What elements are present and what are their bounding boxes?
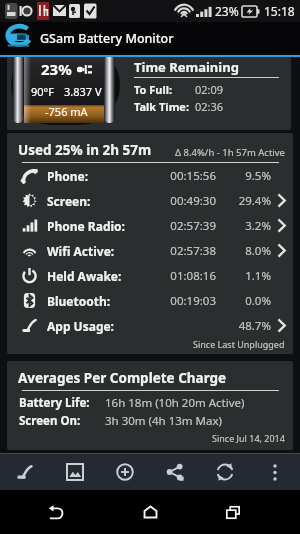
- staticText: Bluetooth:: [47, 293, 111, 309]
- staticText: Phone:: [47, 168, 89, 184]
- staticText: Talk Time:: [134, 99, 195, 114]
- staticText: -756 mA: [45, 104, 88, 119]
- staticText: 16h 18m (10h 20m Active): [105, 395, 245, 411]
- staticText: 00:49:30: [164, 193, 216, 209]
- staticText: Held Awake:: [47, 268, 122, 284]
- staticText: Wifi Active:: [47, 243, 115, 259]
- button[interactable]: Home: [120, 490, 180, 534]
- staticText: 3.2%: [232, 218, 271, 234]
- staticText: Since Last Unplugged: [193, 338, 285, 350]
- staticText: 3h 30m (4h 13m Max): [105, 413, 223, 429]
- staticText: 01:08:16: [164, 268, 216, 284]
- staticText: 02:57:39: [164, 218, 216, 234]
- button[interactable]: Screen:: [7, 188, 293, 213]
- button[interactable]: Share: [150, 454, 200, 490]
- button[interactable]: Phone:: [7, 163, 293, 188]
- staticText: 8.0%: [232, 243, 271, 259]
- button[interactable]: Screenshot: [50, 454, 100, 490]
- staticText: Time Remaining: [134, 58, 239, 76]
- button[interactable]: Battery history chart: [0, 454, 50, 490]
- staticText: 00:19:03: [164, 293, 216, 309]
- staticText: 29.4%: [232, 193, 271, 209]
- staticText: Averages Per Complete Charge: [18, 369, 227, 387]
- staticText: Screen:: [47, 193, 91, 209]
- button[interactable]: Held Awake:: [7, 263, 293, 288]
- staticText: Since Jul 14, 2014: [212, 432, 285, 444]
- button[interactable]: More options: [250, 454, 300, 490]
- staticText: Δ 8.4%/h - 1h 57m Active: [175, 146, 285, 159]
- staticText: 02:57:38: [164, 243, 216, 259]
- staticText: 0.0%: [232, 293, 271, 309]
- button[interactable]: App Usage:: [7, 313, 293, 338]
- button[interactable]: Bluetooth:: [7, 288, 293, 313]
- staticText: 3.837 V: [64, 84, 102, 99]
- staticText: GSam Battery Monitor: [40, 30, 174, 47]
- staticText: Phone Radio:: [47, 218, 125, 234]
- staticText: 23%: [215, 3, 239, 19]
- button[interactable]: Phone Radio:: [7, 213, 293, 238]
- button[interactable]: Refresh: [200, 454, 250, 490]
- staticText: Used 25% in 2h 57m: [18, 141, 152, 159]
- staticText: 02:36: [195, 99, 224, 114]
- staticText: 1.1%: [232, 268, 271, 284]
- staticText: 02:09: [195, 82, 224, 97]
- button[interactable]: Back: [0, 490, 112, 534]
- staticText: 23%: [41, 59, 72, 79]
- staticText: 48.7%: [232, 318, 271, 334]
- staticText: 00:15:56: [164, 168, 216, 184]
- staticText: Battery Life:: [19, 395, 105, 411]
- button[interactable]: Wifi Active:: [7, 238, 293, 263]
- staticText: 9.5%: [232, 168, 271, 184]
- staticText: 15:18: [264, 3, 295, 19]
- staticText: To Full:: [134, 82, 195, 97]
- button[interactable]: Recents: [201, 490, 265, 534]
- staticText: 90°F: [31, 84, 55, 99]
- staticText: Screen On:: [19, 413, 105, 429]
- button[interactable]: Add: [100, 454, 150, 490]
- staticText: App Usage:: [47, 318, 114, 334]
